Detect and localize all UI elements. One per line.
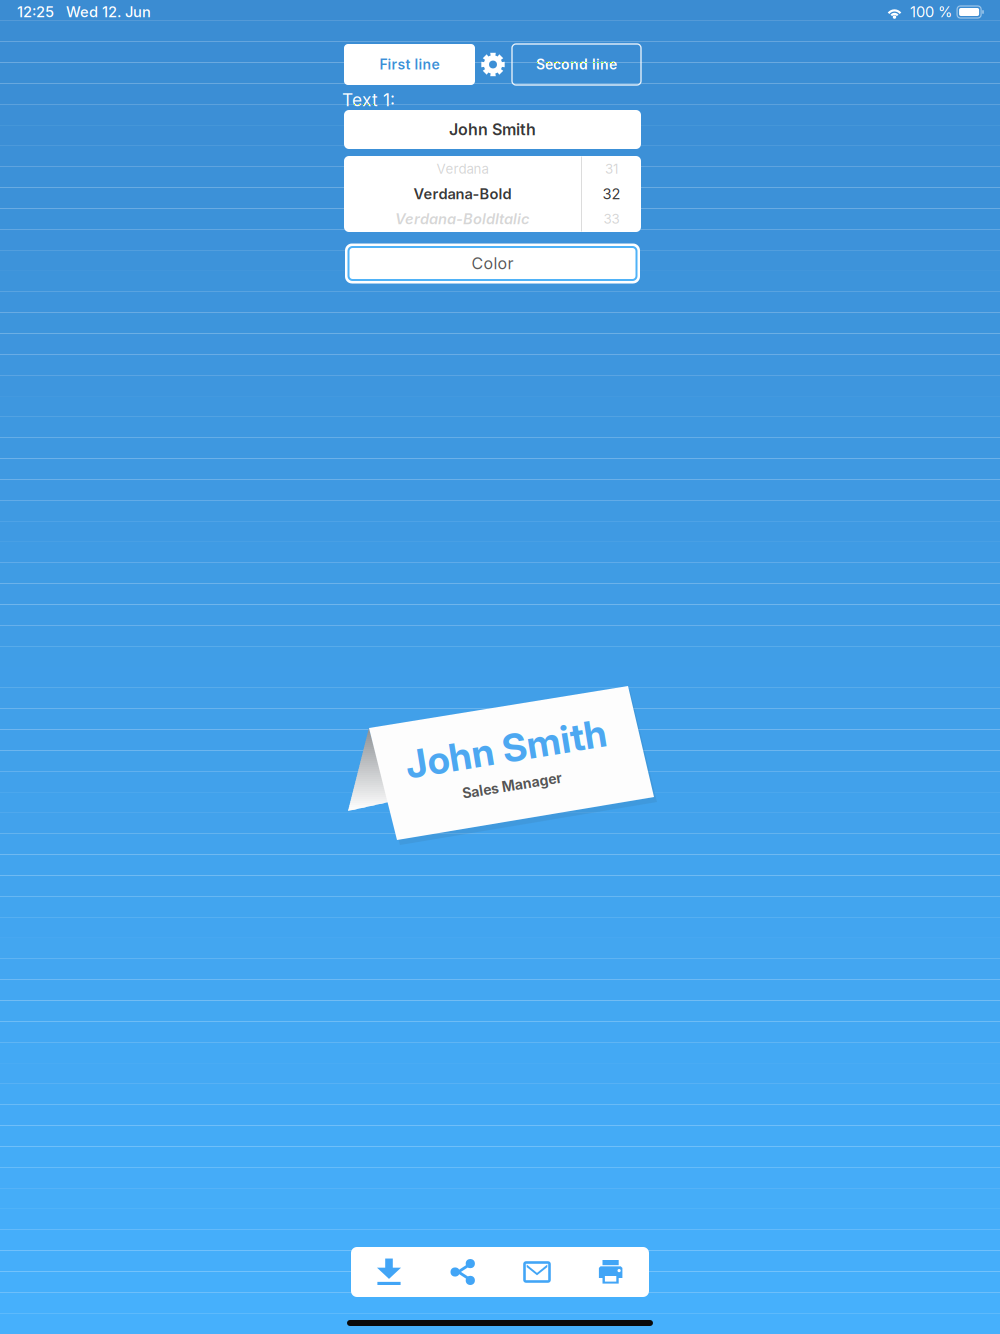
staticText: 31: [605, 161, 618, 177]
staticText: Verdana-BoldItalic: [395, 210, 530, 228]
staticText: Verdana: [436, 161, 488, 177]
staticText: Verdana-Bold: [413, 185, 511, 203]
button[interactable]: Second line: [512, 44, 641, 85]
staticText: John Smith: [406, 725, 610, 771]
staticText: Color: [471, 254, 513, 273]
button[interactable]: Share: [426, 1247, 500, 1297]
staticText: First line: [379, 56, 439, 73]
staticText: John Smith: [449, 120, 536, 139]
button[interactable]: First line: [344, 44, 475, 85]
staticText: Second line: [536, 56, 617, 73]
staticText: Wed 12. Jun: [66, 3, 151, 21]
staticText: 32: [602, 185, 620, 203]
button[interactable]: Print: [574, 1247, 648, 1297]
button[interactable]: Email: [500, 1247, 574, 1297]
button[interactable]: Settings: [481, 52, 505, 76]
staticText: Text 1:: [342, 89, 395, 110]
staticText: 12:25: [17, 3, 54, 21]
button[interactable]: Download: [352, 1247, 426, 1297]
staticText: Sales Manager: [457, 777, 558, 794]
staticText: 100 %: [910, 3, 952, 21]
button[interactable]: Color: [345, 243, 640, 283]
staticText: 33: [603, 211, 619, 227]
